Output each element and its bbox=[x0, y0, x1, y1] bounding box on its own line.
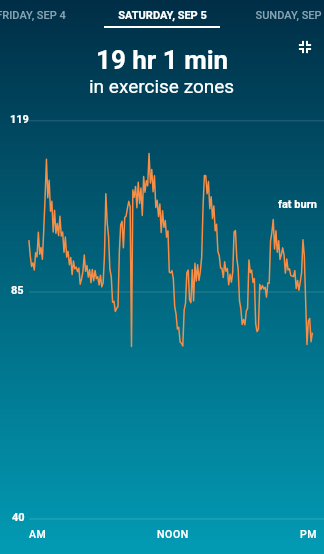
staticText: SATURDAY, SEP 5 bbox=[118, 9, 207, 22]
button[interactable]: Collapse chart bbox=[294, 36, 316, 58]
staticText: PM bbox=[300, 528, 318, 540]
staticText: 85 bbox=[11, 284, 24, 297]
staticText: NOON bbox=[157, 528, 189, 540]
button[interactable]: FRIDAY, SEP 4 bbox=[0, 3, 96, 27]
button[interactable]: SUNDAY, SEP 6 bbox=[228, 3, 324, 27]
staticText: in exercise zones bbox=[89, 75, 235, 97]
staticText: AM bbox=[29, 528, 47, 540]
button[interactable]: SATURDAY, SEP 5 bbox=[97, 3, 227, 27]
staticText: fat burn bbox=[278, 198, 317, 211]
staticText: 119 bbox=[10, 113, 29, 126]
staticText: FRIDAY, SEP 4 bbox=[0, 9, 66, 22]
staticText: SUNDAY, SEP 6 bbox=[255, 9, 324, 22]
staticText: 40 bbox=[12, 511, 25, 524]
staticText: 19 hr 1 min bbox=[96, 45, 229, 75]
